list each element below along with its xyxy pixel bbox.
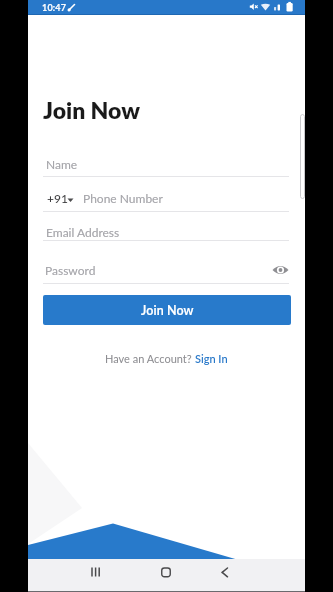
button[interactable]: Join Now	[43, 295, 291, 325]
button[interactable]: Email Address	[43, 217, 289, 241]
button[interactable]	[84, 561, 108, 585]
button[interactable]: Name	[43, 153, 289, 177]
staticText: Email Address	[46, 225, 120, 239]
button[interactable]: Password	[43, 259, 289, 284]
staticText: Phone Number	[83, 191, 163, 205]
button[interactable]	[269, 259, 291, 281]
staticText: Password	[45, 263, 96, 277]
button[interactable]: Sign In	[195, 352, 228, 365]
staticText: Join Now	[43, 96, 141, 124]
staticText: Join Now	[141, 303, 194, 318]
button[interactable]	[214, 561, 238, 585]
staticText: Name	[46, 157, 78, 171]
button[interactable]	[154, 561, 178, 585]
button[interactable]: +91	[43, 188, 289, 212]
staticText: Have an Account?	[105, 352, 195, 365]
staticText: 10:47	[42, 2, 67, 13]
staticText: +91	[47, 191, 68, 205]
